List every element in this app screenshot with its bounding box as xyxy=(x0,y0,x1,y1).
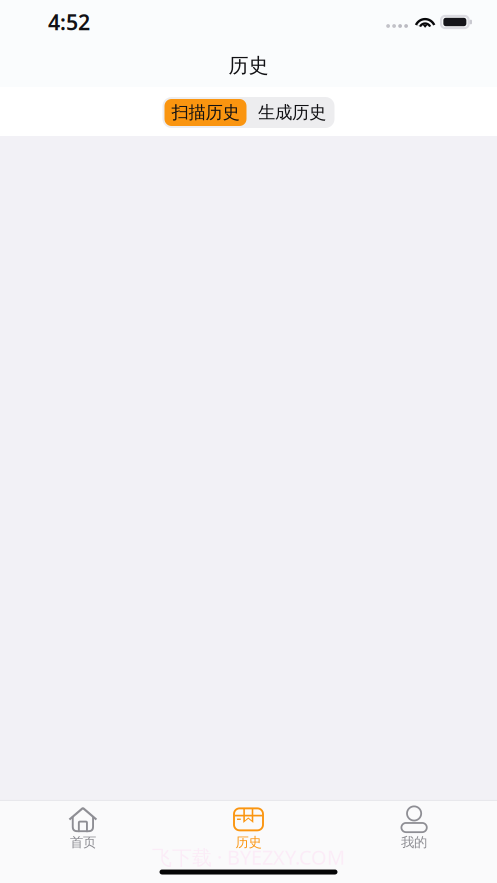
button[interactable]: 历史 xyxy=(166,800,331,883)
staticText: 生成历史 xyxy=(258,102,326,123)
staticText: 首页 xyxy=(70,834,96,851)
staticText: 飞下载 · BYEZXY.COM xyxy=(152,844,345,870)
staticText: 扫描历史 xyxy=(171,102,239,123)
button[interactable]: 生成历史 xyxy=(246,99,332,126)
button[interactable]: 我的 xyxy=(331,800,497,883)
button[interactable]: 扫描历史 xyxy=(164,99,246,126)
button[interactable]: 首页 xyxy=(0,800,166,883)
staticText: 4:52 xyxy=(48,8,90,36)
staticText: 历史 xyxy=(235,834,261,851)
staticText: 历史 xyxy=(228,53,268,78)
staticText: 我的 xyxy=(401,834,427,851)
